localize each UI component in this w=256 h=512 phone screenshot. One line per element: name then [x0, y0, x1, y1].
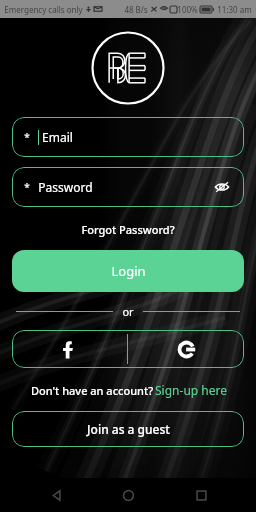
button[interactable]: Back — [39, 478, 73, 512]
button[interactable]: * — [12, 167, 244, 207]
staticText: Emergency calls only — [4, 4, 83, 15]
staticText: or — [122, 304, 134, 319]
staticText: Password — [38, 179, 93, 195]
staticText: 100% — [177, 4, 198, 15]
button[interactable]: Sign-up here — [155, 382, 227, 398]
staticText: * — [24, 130, 30, 144]
staticText: Email — [42, 129, 73, 145]
staticText: Join as a guest — [87, 421, 170, 437]
staticText: Sign-up here — [155, 382, 227, 398]
button[interactable]: Join as a guest — [12, 411, 244, 447]
staticText: Login — [111, 262, 146, 280]
button[interactable]: Sign in with Google — [128, 330, 244, 368]
staticText: * — [24, 180, 30, 194]
button[interactable]: Home — [111, 478, 145, 512]
button[interactable]: Forgot Password? — [75, 220, 181, 239]
button[interactable]: Sign in with Facebook — [12, 330, 127, 368]
button[interactable]: * — [12, 117, 244, 157]
staticText: 11:30 am — [217, 4, 252, 15]
button[interactable]: Recent apps — [184, 478, 218, 512]
button[interactable]: Toggle password visibility — [212, 177, 232, 197]
button[interactable]: Login — [12, 250, 244, 292]
staticText: Forgot Password? — [81, 222, 175, 237]
staticText: Don't have an account? — [29, 383, 155, 398]
staticText: 48 B/s — [124, 4, 148, 15]
